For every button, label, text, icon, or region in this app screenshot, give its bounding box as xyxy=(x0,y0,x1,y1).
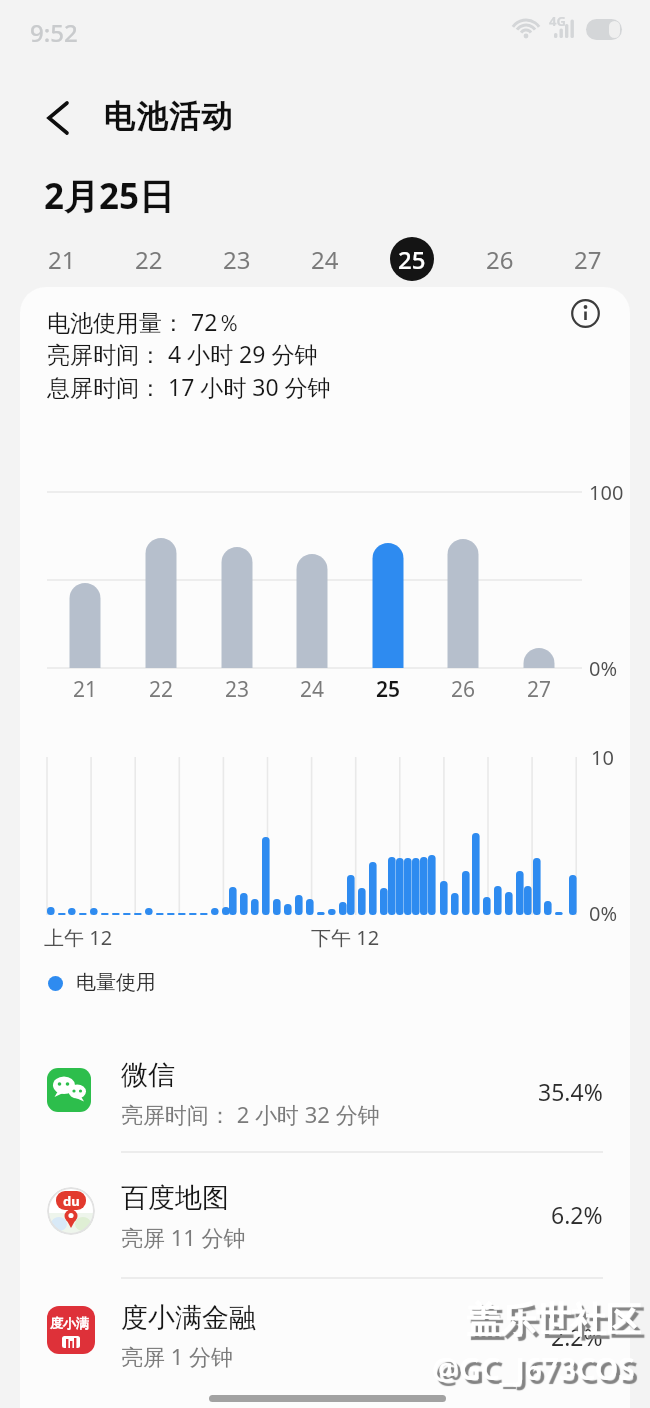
staticText: 10 xyxy=(591,744,614,771)
staticText: 22 xyxy=(135,243,163,276)
staticText: 24 xyxy=(300,675,325,704)
button[interactable] xyxy=(566,294,604,332)
staticText: 25 xyxy=(376,675,401,704)
staticText: 上午 12 xyxy=(44,924,113,951)
staticText: 23 xyxy=(225,675,250,704)
button[interactable] xyxy=(20,1295,630,1387)
button[interactable]: 21 xyxy=(18,235,106,283)
staticText: 35.4% xyxy=(538,1076,603,1107)
button[interactable]: 24 xyxy=(281,235,369,283)
button[interactable]: 23 xyxy=(193,235,281,283)
staticText: 微信 xyxy=(121,1058,175,1092)
staticText: 度小满 xyxy=(50,1315,89,1331)
staticText: 22 xyxy=(149,675,174,704)
staticText: 亮屏 1 分钟 xyxy=(121,1341,234,1371)
staticText: 6.2% xyxy=(551,1199,603,1230)
staticText: 27 xyxy=(574,243,602,276)
staticText: 25 xyxy=(398,243,426,276)
staticText: 下午 12 xyxy=(311,924,380,951)
staticText: 亮屏时间： 4 小时 29 分钟 xyxy=(47,338,318,369)
staticText: 0% xyxy=(589,655,618,682)
staticText: 电量使用 xyxy=(76,970,156,995)
staticText: 27 xyxy=(527,675,552,704)
staticText: 24 xyxy=(311,243,339,276)
button[interactable]: 27 xyxy=(544,235,632,283)
button[interactable]: 22 xyxy=(105,235,193,283)
staticText: 息屏时间： 17 小时 30 分钟 xyxy=(47,371,331,402)
staticText: 26 xyxy=(486,243,514,276)
button[interactable]: 25 xyxy=(368,235,456,283)
staticText: 电池使用量： 72％ xyxy=(47,306,241,337)
staticText: 盖乐世社区 xyxy=(466,1298,641,1342)
staticText: @GC_J673COS xyxy=(432,1348,635,1389)
staticText: 4G xyxy=(549,12,566,30)
staticText: 26 xyxy=(451,675,476,704)
staticText: 度小满金融 xyxy=(121,1301,256,1335)
staticText: 23 xyxy=(223,243,251,276)
button[interactable]: 26 xyxy=(456,235,544,283)
staticText: du xyxy=(63,1192,80,1210)
button[interactable] xyxy=(36,96,80,140)
staticText: 电池活动 xyxy=(103,97,233,136)
staticText: 2月25日 xyxy=(44,172,175,220)
staticText: 0% xyxy=(589,900,618,927)
staticText: 百度地图 xyxy=(121,1181,229,1215)
staticText: 21 xyxy=(73,675,98,704)
staticText: 21 xyxy=(48,243,76,276)
button[interactable] xyxy=(20,1056,630,1148)
staticText: 100 xyxy=(589,479,624,506)
button[interactable] xyxy=(20,1175,630,1267)
staticText: 亮屏时间： 2 小时 32 分钟 xyxy=(121,1099,380,1129)
staticText: 9:52 xyxy=(30,16,78,49)
staticText: 亮屏 11 分钟 xyxy=(121,1222,246,1252)
staticText: 2.2% xyxy=(551,1321,603,1352)
